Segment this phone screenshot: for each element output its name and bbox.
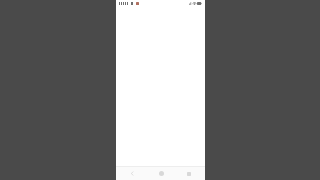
button[interactable]: Recent apps [178, 167, 200, 180]
button[interactable]: Home [150, 167, 172, 180]
